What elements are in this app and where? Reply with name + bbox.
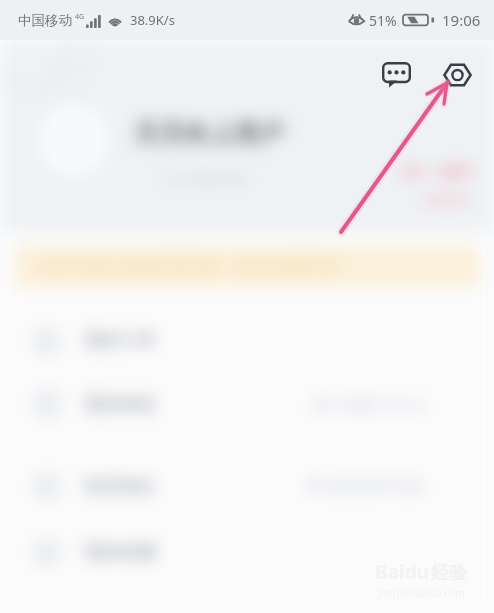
button[interactable]: 我的钱包 (0, 372, 494, 436)
button[interactable]: 您的专属会员权益即将到期 (15, 246, 479, 287)
staticText: 我的收藏 (84, 541, 156, 564)
staticText: 中国移动 (18, 12, 72, 29)
staticText: 签到 (440, 162, 472, 182)
staticText: 4G (75, 12, 85, 22)
button[interactable]: 收货地址 (0, 453, 494, 519)
staticText: Baidu (375, 559, 430, 585)
button[interactable]: 我的订单 (0, 309, 494, 372)
staticText: 我的钱包 (84, 393, 156, 416)
staticText: 19:06 (442, 10, 481, 30)
staticText: 38.9K/s (130, 11, 175, 29)
staticText: 51% (369, 11, 397, 30)
button[interactable]: Settings (435, 53, 479, 97)
staticText: 收货地址 (84, 475, 156, 498)
button[interactable]: 我的收藏 (0, 519, 494, 585)
staticText: 经验 (431, 562, 467, 585)
staticText: 我的订单 (84, 329, 156, 352)
button[interactable]: Messages (374, 53, 418, 97)
staticText: 天天向上用户 (134, 118, 284, 149)
